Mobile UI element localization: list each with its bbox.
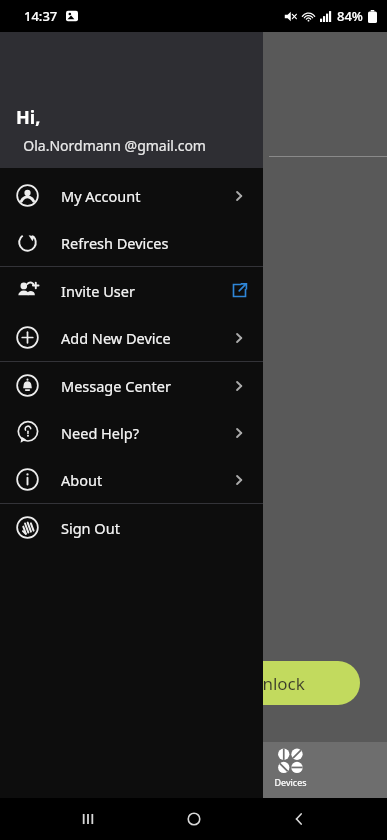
staticText: Invite User xyxy=(61,281,135,301)
button[interactable]: My Account xyxy=(0,172,263,219)
staticText: Refresh Devices xyxy=(61,233,169,253)
staticText: Unlock xyxy=(250,672,305,695)
staticText: Sign Out xyxy=(61,518,120,538)
staticText: Message Center xyxy=(61,376,171,396)
staticText: Ola.Nordmann @gmail.com xyxy=(16,136,206,155)
button[interactable]: Sign Out xyxy=(0,504,263,551)
staticText: My Account xyxy=(61,186,141,206)
button[interactable]: Message Center xyxy=(0,362,263,409)
button[interactable]: Home xyxy=(176,801,212,837)
button[interactable]: Need Help? xyxy=(0,409,263,456)
staticText: 14:37 xyxy=(24,7,58,25)
staticText: Devices xyxy=(274,776,307,788)
staticText: About xyxy=(61,470,103,490)
staticText: Add New Device xyxy=(61,328,171,348)
button[interactable]: Back xyxy=(281,801,317,837)
staticText: Hi, xyxy=(16,105,41,130)
button[interactable]: Unlock xyxy=(195,661,360,705)
button[interactable]: Invite User xyxy=(0,267,263,314)
button[interactable]: Recents xyxy=(70,801,106,837)
button[interactable]: Devices xyxy=(274,748,307,788)
button[interactable]: Add New Device xyxy=(0,314,263,361)
button[interactable]: Refresh Devices xyxy=(0,219,263,266)
button[interactable]: About xyxy=(0,456,263,503)
staticText: Need Help? xyxy=(61,423,139,443)
staticText: 84% xyxy=(337,7,363,25)
